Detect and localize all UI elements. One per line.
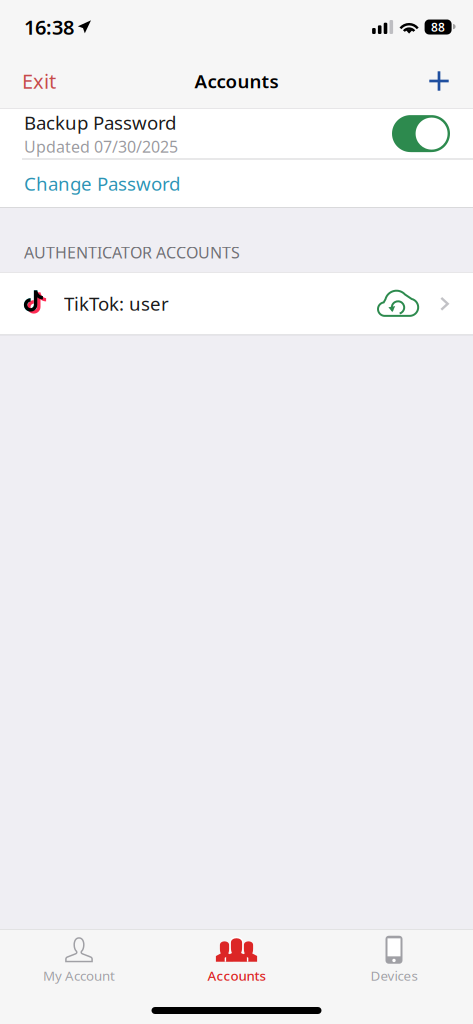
button[interactable]: Exit (0, 54, 70, 108)
button[interactable]: TikTok: user (0, 273, 473, 335)
staticText: AUTHENTICATOR ACCOUNTS (24, 242, 240, 263)
staticText: Devices (370, 967, 417, 984)
staticText: Accounts (194, 69, 278, 93)
staticText: Backup Password (24, 110, 176, 135)
staticText: 16:38 (24, 14, 74, 40)
button[interactable]: Change Password (0, 159, 473, 207)
staticText: My Account (43, 967, 115, 984)
button[interactable]: Devices (315, 930, 472, 988)
staticText: Change Password (24, 171, 180, 196)
staticText: TikTok: user (64, 291, 169, 316)
button[interactable]: Accounts (157, 930, 315, 988)
button[interactable]: My Account (0, 930, 157, 988)
staticText: Exit (22, 68, 56, 94)
staticText: 88 (431, 19, 445, 35)
staticText: Accounts (207, 967, 265, 984)
staticText: Updated 07/30/2025 (24, 136, 178, 157)
button[interactable]: Add account (414, 54, 473, 108)
